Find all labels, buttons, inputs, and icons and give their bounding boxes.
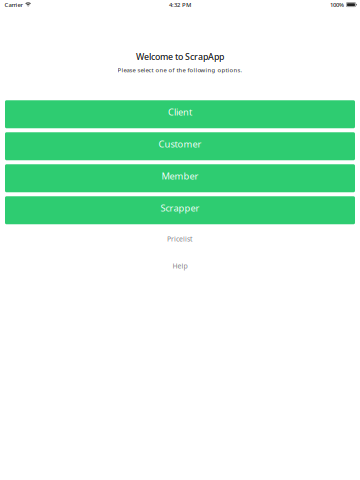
button[interactable]: Pricelist	[0, 232, 360, 246]
staticText: Carrier	[4, 1, 22, 9]
staticText: Welcome to ScrapApp	[136, 51, 224, 62]
staticText: Customer	[158, 138, 201, 150]
staticText: 100%	[330, 1, 344, 9]
staticText: Pricelist	[167, 234, 193, 243]
staticText: Client	[168, 106, 192, 118]
button[interactable]: Scrapper	[5, 196, 355, 224]
staticText: Scrapper	[160, 202, 199, 214]
button[interactable]: Help	[0, 259, 360, 273]
staticText: Help	[172, 261, 187, 270]
button[interactable]: Customer	[5, 132, 355, 160]
staticText: Please select one of the following optio…	[117, 66, 242, 74]
button[interactable]: Client	[5, 100, 355, 128]
button[interactable]: Member	[5, 164, 355, 192]
staticText: Member	[161, 170, 198, 182]
staticText: 4:32 PM	[169, 1, 191, 9]
